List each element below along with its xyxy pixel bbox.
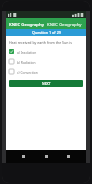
button[interactable]: b) Radiation (9, 59, 83, 64)
button[interactable]: c) Convection (9, 69, 83, 74)
staticText: Question 1 of 29 (32, 30, 61, 35)
staticText: Heat received by earth from the Sun is k… (9, 40, 83, 45)
button[interactable]: NEXT (9, 80, 83, 87)
staticText: c) Convection (17, 70, 38, 74)
button[interactable]: Back (19, 152, 28, 161)
staticText: b) Radiation (17, 60, 36, 64)
staticText: KNEC Geography (9, 21, 44, 27)
button[interactable]: Home (42, 152, 51, 161)
button[interactable]: Recents (64, 152, 73, 161)
button[interactable]: a) Insolation (9, 49, 83, 54)
staticText: a) Insolation (17, 50, 37, 54)
staticText: KNEC Geography (47, 21, 82, 27)
staticText: NEXT (42, 81, 51, 86)
